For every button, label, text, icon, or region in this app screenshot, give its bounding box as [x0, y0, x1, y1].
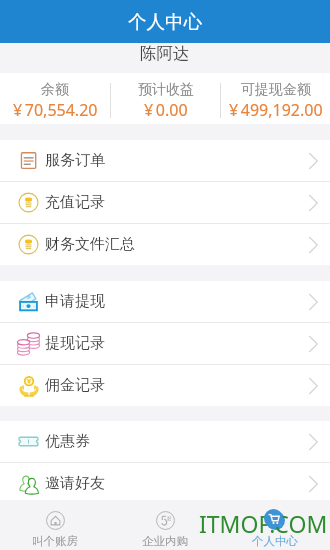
staticText: 优惠券 — [45, 432, 90, 451]
button[interactable]: Home — [0, 500, 110, 550]
button[interactable]: 提现记录 — [0, 323, 330, 364]
button[interactable]: 邀请好友 — [0, 463, 330, 504]
button[interactable]: Profile — [220, 500, 330, 550]
staticText: ITMOP.COM — [199, 508, 328, 539]
button[interactable]: Corporate purchase — [110, 500, 220, 550]
staticText: ¥ 0.00 — [144, 99, 188, 121]
button[interactable]: 佣金记录 — [0, 365, 330, 406]
staticText: ¥ 499,192.00 — [229, 99, 323, 121]
button[interactable]: 财务文件汇总 — [0, 224, 330, 265]
staticText: 充值记录 — [45, 193, 105, 212]
staticText: 预计收益 — [138, 81, 194, 99]
staticText: 申请提现 — [45, 292, 105, 311]
staticText: 邀请好友 — [45, 474, 105, 493]
staticText: 服务订单 — [45, 151, 105, 170]
staticText: 余额 — [41, 81, 69, 99]
staticText: 可提现金额 — [241, 81, 311, 99]
staticText: ¥ 70,554.20 — [13, 99, 98, 121]
staticText: 提现记录 — [45, 334, 105, 353]
staticText: 企业内购 — [142, 534, 188, 548]
staticText: 叫个账房 — [32, 534, 78, 548]
staticText: 陈阿达 — [140, 43, 190, 64]
button[interactable]: 申请提现 — [0, 281, 330, 322]
staticText: 个人中心 — [128, 10, 202, 33]
button[interactable]: 服务订单 — [0, 140, 330, 181]
button[interactable]: 优惠券 — [0, 421, 330, 462]
staticText: 财务文件汇总 — [45, 235, 135, 254]
button[interactable]: 充值记录 — [0, 182, 330, 223]
staticText: 佣金记录 — [45, 376, 105, 395]
staticText: 个人中心 — [252, 534, 298, 548]
